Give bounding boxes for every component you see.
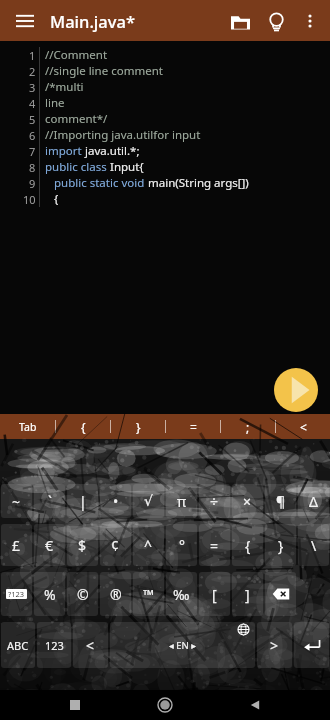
button[interactable]: =: [166, 414, 220, 439]
button[interactable]: ^: [133, 524, 164, 566]
staticText: {: [81, 419, 86, 435]
button[interactable]: <: [276, 414, 330, 439]
staticText: 123: [45, 638, 64, 653]
button[interactable]: Run: [274, 368, 318, 412]
button[interactable]: £: [1, 524, 32, 566]
button[interactable]: {: [56, 414, 110, 439]
button[interactable]: ?123: [1, 572, 32, 616]
button[interactable]: Hints: [258, 3, 294, 39]
staticText: £: [12, 536, 21, 555]
button[interactable]: √: [133, 484, 164, 518]
staticText: Main.java*: [50, 10, 135, 32]
staticText: <: [300, 419, 307, 435]
button[interactable]: Recents: [60, 690, 90, 720]
button[interactable]: 123: [37, 622, 71, 668]
staticText: ®: [110, 585, 122, 604]
button[interactable]: Enter: [294, 622, 329, 668]
staticText: {: [45, 191, 59, 207]
staticText: √: [144, 493, 153, 509]
button[interactable]: ¢: [100, 524, 131, 566]
button[interactable]: Backspace: [265, 572, 296, 616]
staticText: ¶: [276, 492, 286, 511]
staticText: 4: [29, 96, 36, 111]
staticText: line: [45, 95, 65, 111]
staticText: //Importing java.utilfor input: [45, 127, 201, 143]
staticText: /*multi: [45, 79, 84, 95]
staticText: }: [278, 536, 284, 555]
staticText: 7: [29, 144, 36, 159]
staticText: 2: [29, 64, 36, 79]
staticText: ^: [144, 536, 153, 555]
staticText: `: [48, 492, 52, 511]
staticText: import: [45, 143, 85, 159]
staticText: 10: [23, 192, 36, 207]
button[interactable]: Back: [240, 690, 270, 720]
staticText: =: [210, 536, 219, 555]
staticText: |: [79, 492, 87, 511]
staticText: 1: [29, 48, 36, 63]
button[interactable]: }: [111, 414, 165, 439]
button[interactable]: Tab: [0, 414, 55, 439]
button[interactable]: Space: [110, 622, 255, 668]
button[interactable]: \: [298, 524, 329, 566]
button[interactable]: More options: [294, 5, 326, 37]
button[interactable]: $: [67, 524, 98, 566]
staticText: //single line comment: [45, 63, 163, 79]
button[interactable]: ;: [221, 414, 275, 439]
button[interactable]: ‰: [166, 572, 197, 616]
button[interactable]: ]: [232, 572, 263, 616]
button[interactable]: ×: [232, 484, 263, 518]
staticText: Tab: [19, 420, 37, 434]
staticText: 8: [29, 160, 36, 175]
button[interactable]: ¶: [265, 484, 296, 518]
staticText: =: [190, 419, 197, 435]
staticText: €: [45, 536, 54, 555]
staticText: 3: [29, 80, 36, 95]
staticText: ÷: [210, 492, 219, 511]
staticText: }: [136, 419, 141, 435]
staticText: ;: [246, 419, 250, 435]
button[interactable]: ©: [67, 572, 98, 616]
staticText: 6: [29, 128, 36, 143]
button[interactable]: ™: [133, 572, 164, 616]
staticText: ™: [143, 585, 154, 604]
button[interactable]: Menu: [8, 4, 42, 38]
staticText: comment*/: [45, 111, 108, 127]
staticText: $: [78, 536, 87, 555]
staticText: public static void: [45, 175, 148, 191]
staticText: ~: [12, 492, 21, 511]
button[interactable]: Δ: [298, 484, 329, 518]
button[interactable]: |: [67, 484, 98, 518]
staticText: //Comment: [45, 47, 108, 63]
staticText: ‰: [173, 585, 190, 604]
button[interactable]: }: [265, 524, 296, 566]
button[interactable]: π: [166, 484, 197, 518]
button[interactable]: ®: [100, 572, 131, 616]
button[interactable]: ABC: [1, 622, 35, 668]
button[interactable]: %: [34, 572, 65, 616]
button[interactable]: `: [34, 484, 65, 518]
staticText: ©: [77, 585, 89, 604]
button[interactable]: [: [199, 572, 230, 616]
button[interactable]: ~: [1, 484, 32, 518]
staticText: Δ: [309, 492, 318, 511]
button[interactable]: •: [100, 484, 131, 518]
staticText: public class: [45, 159, 110, 175]
staticText: main(String args[]): [148, 175, 249, 191]
button[interactable]: °: [166, 524, 197, 566]
staticText: %: [44, 585, 56, 604]
staticText: 9: [29, 176, 36, 191]
button[interactable]: {: [232, 524, 263, 566]
button[interactable]: >: [257, 622, 292, 668]
staticText: 5: [29, 112, 36, 127]
button[interactable]: ÷: [199, 484, 230, 518]
staticText: ×: [243, 492, 252, 511]
staticText: ?123: [8, 589, 25, 599]
button[interactable]: Open folder: [222, 3, 258, 39]
button[interactable]: Home: [150, 690, 180, 720]
button[interactable]: =: [199, 524, 230, 566]
button[interactable]: <: [73, 622, 108, 668]
staticText: π: [177, 492, 187, 511]
button[interactable]: €: [34, 524, 65, 566]
staticText: <: [86, 636, 95, 655]
